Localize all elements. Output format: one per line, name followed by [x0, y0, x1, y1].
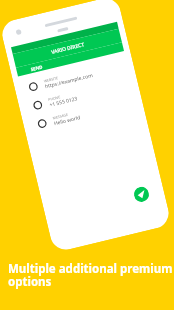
- staticText: SEND: [30, 64, 43, 72]
- staticText: WEBSITE: [43, 75, 59, 83]
- button[interactable]: MESSAGE: [28, 92, 138, 136]
- staticText: VARIO DIRECT: [50, 41, 85, 56]
- button[interactable]: WEBSITE: [19, 55, 129, 99]
- staticText: MESSAGE: [52, 112, 69, 120]
- staticText: Hello world: [53, 114, 81, 127]
- staticText: PHONE: [48, 94, 61, 102]
- staticText: Multiple additional premium options: [8, 261, 173, 290]
- button[interactable]: Send: [132, 185, 150, 203]
- staticText: +1 555 0123: [49, 95, 79, 109]
- button[interactable]: PHONE: [23, 73, 134, 117]
- staticText: https://example.com: [44, 72, 94, 90]
